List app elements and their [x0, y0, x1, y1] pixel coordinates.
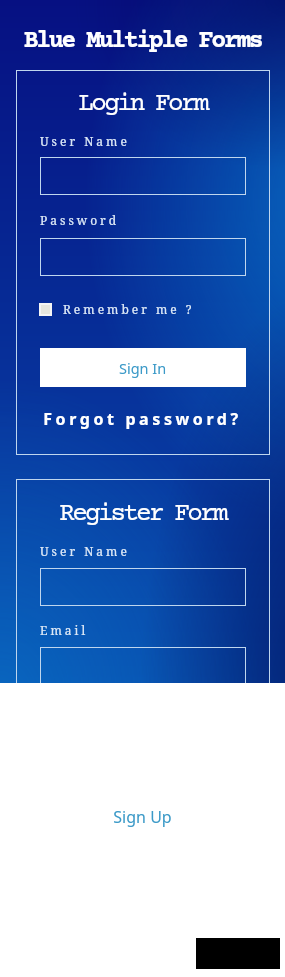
- staticText: Blue Multiple Forms: [0, 27, 285, 55]
- button[interactable]: Text field: [40, 238, 246, 276]
- staticText: Email: [40, 622, 89, 638]
- button[interactable]: Remember me ?: [39, 301, 195, 317]
- staticText: Remember me ?: [63, 301, 195, 317]
- button[interactable]: Text field: [40, 157, 246, 195]
- button[interactable]: Sign In: [40, 348, 246, 387]
- button[interactable]: Text field: [40, 647, 246, 685]
- button[interactable]: Forgot password?: [0, 408, 285, 430]
- staticText: User Name: [40, 543, 130, 559]
- button[interactable]: Text field: [40, 568, 246, 606]
- button[interactable]: Sign Up: [0, 806, 285, 828]
- staticText: Register Form: [0, 500, 285, 529]
- staticText: Login Form: [0, 90, 285, 119]
- staticText: User Name: [40, 133, 130, 149]
- staticText: Password: [40, 212, 120, 228]
- staticText: Sign In: [119, 358, 167, 378]
